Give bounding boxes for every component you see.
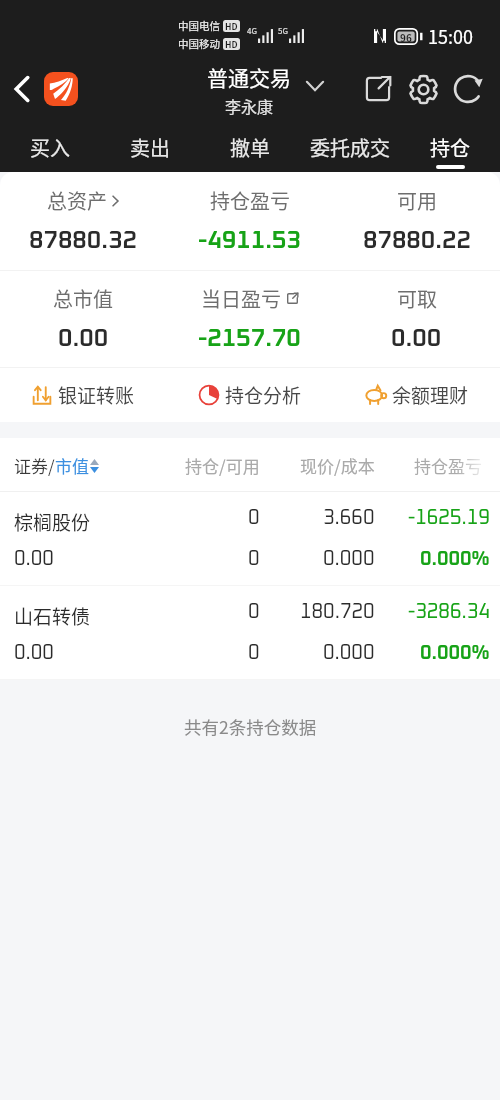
staticText: 0.00 [14, 643, 54, 663]
staticText: 证券/ [14, 453, 55, 478]
staticText: 0.000 [323, 643, 375, 663]
staticText: 96 [400, 30, 412, 44]
button[interactable]: 总资产 [0, 172, 166, 270]
staticText: 买入 [30, 133, 70, 162]
staticText: 5G [278, 25, 288, 37]
staticText: 棕榈股份 [14, 508, 91, 532]
button[interactable]: Back [6, 73, 38, 105]
staticText: 中国移动 [178, 36, 220, 51]
staticText: HD [225, 20, 238, 32]
staticText: 共有2条持仓数据 [184, 714, 317, 739]
staticText: 0.00 [58, 326, 109, 351]
button[interactable]: 可用 [333, 172, 500, 270]
staticText: 87880.22 [363, 228, 471, 253]
staticText: 卖出 [130, 133, 170, 162]
button[interactable]: 余额理财 [333, 368, 500, 422]
staticText: -1625.19 [408, 508, 490, 528]
staticText: 委托成交 [310, 133, 390, 162]
staticText: 0.000% [420, 643, 490, 663]
staticText: 中国电信 [178, 18, 220, 33]
staticText: 4G [247, 25, 257, 37]
button[interactable]: 棕榈股份 [0, 492, 500, 586]
button[interactable]: 总市值 [0, 271, 166, 367]
staticText: 0.000 [323, 549, 375, 569]
button[interactable]: 买入 [0, 122, 100, 172]
button[interactable]: 持仓盈亏 [166, 172, 333, 270]
button[interactable]: 持仓 [400, 122, 500, 172]
button[interactable]: Share [360, 71, 396, 107]
staticText: -4911.53 [198, 228, 301, 253]
button[interactable]: 撤单 [200, 122, 300, 172]
staticText: 0.000% [420, 549, 490, 569]
staticText: 0.00 [391, 326, 442, 351]
staticText: 0.00 [14, 549, 54, 569]
staticText: 银证转账 [58, 381, 135, 409]
staticText: 可取 [397, 284, 437, 313]
button[interactable]: 当日盈亏 [166, 271, 333, 367]
button[interactable]: App icon [44, 72, 78, 106]
button[interactable]: 山石转债 [0, 586, 500, 680]
staticText: 总市值 [53, 284, 113, 313]
staticText: 当日盈亏 [201, 284, 281, 313]
button[interactable]: 可取 [333, 271, 500, 367]
button[interactable]: Settings [405, 71, 441, 107]
staticText: 持仓盈亏 [414, 453, 482, 478]
staticText: 持仓盈亏 [210, 186, 290, 215]
staticText: 180.720 [300, 602, 375, 622]
button[interactable]: Refresh [450, 71, 486, 107]
staticText: 现价/成本 [300, 453, 375, 478]
staticText: 市值 [55, 453, 89, 478]
staticText: 0 [248, 508, 260, 528]
staticText: -2157.70 [198, 326, 301, 351]
button[interactable]: 银证转账 [0, 368, 166, 422]
button[interactable]: 卖出 [100, 122, 200, 172]
button[interactable]: 持仓分析 [166, 368, 333, 422]
staticText: 可用 [397, 186, 437, 215]
button[interactable]: 委托成交 [300, 122, 400, 172]
staticText: 0 [248, 643, 260, 663]
staticText: 87880.32 [29, 228, 137, 253]
staticText: 持仓 [430, 133, 470, 162]
staticText: 山石转债 [14, 602, 91, 626]
staticText: 3.660 [323, 508, 375, 528]
staticText: 0 [248, 549, 260, 569]
staticText: 普通交易 [207, 62, 291, 92]
staticText: 15:00 [428, 23, 473, 49]
staticText: 0 [248, 602, 260, 622]
staticText: 撤单 [230, 133, 270, 162]
staticText: 李永康 [225, 94, 274, 117]
button[interactable]: 证券/ [0, 438, 500, 492]
staticText: 持仓/可用 [185, 453, 260, 478]
staticText: 余额理财 [392, 381, 469, 409]
staticText: -3286.34 [408, 602, 490, 622]
staticText: 总资产 [47, 186, 107, 215]
staticText: HD [225, 38, 238, 50]
staticText: 持仓分析 [225, 381, 302, 409]
